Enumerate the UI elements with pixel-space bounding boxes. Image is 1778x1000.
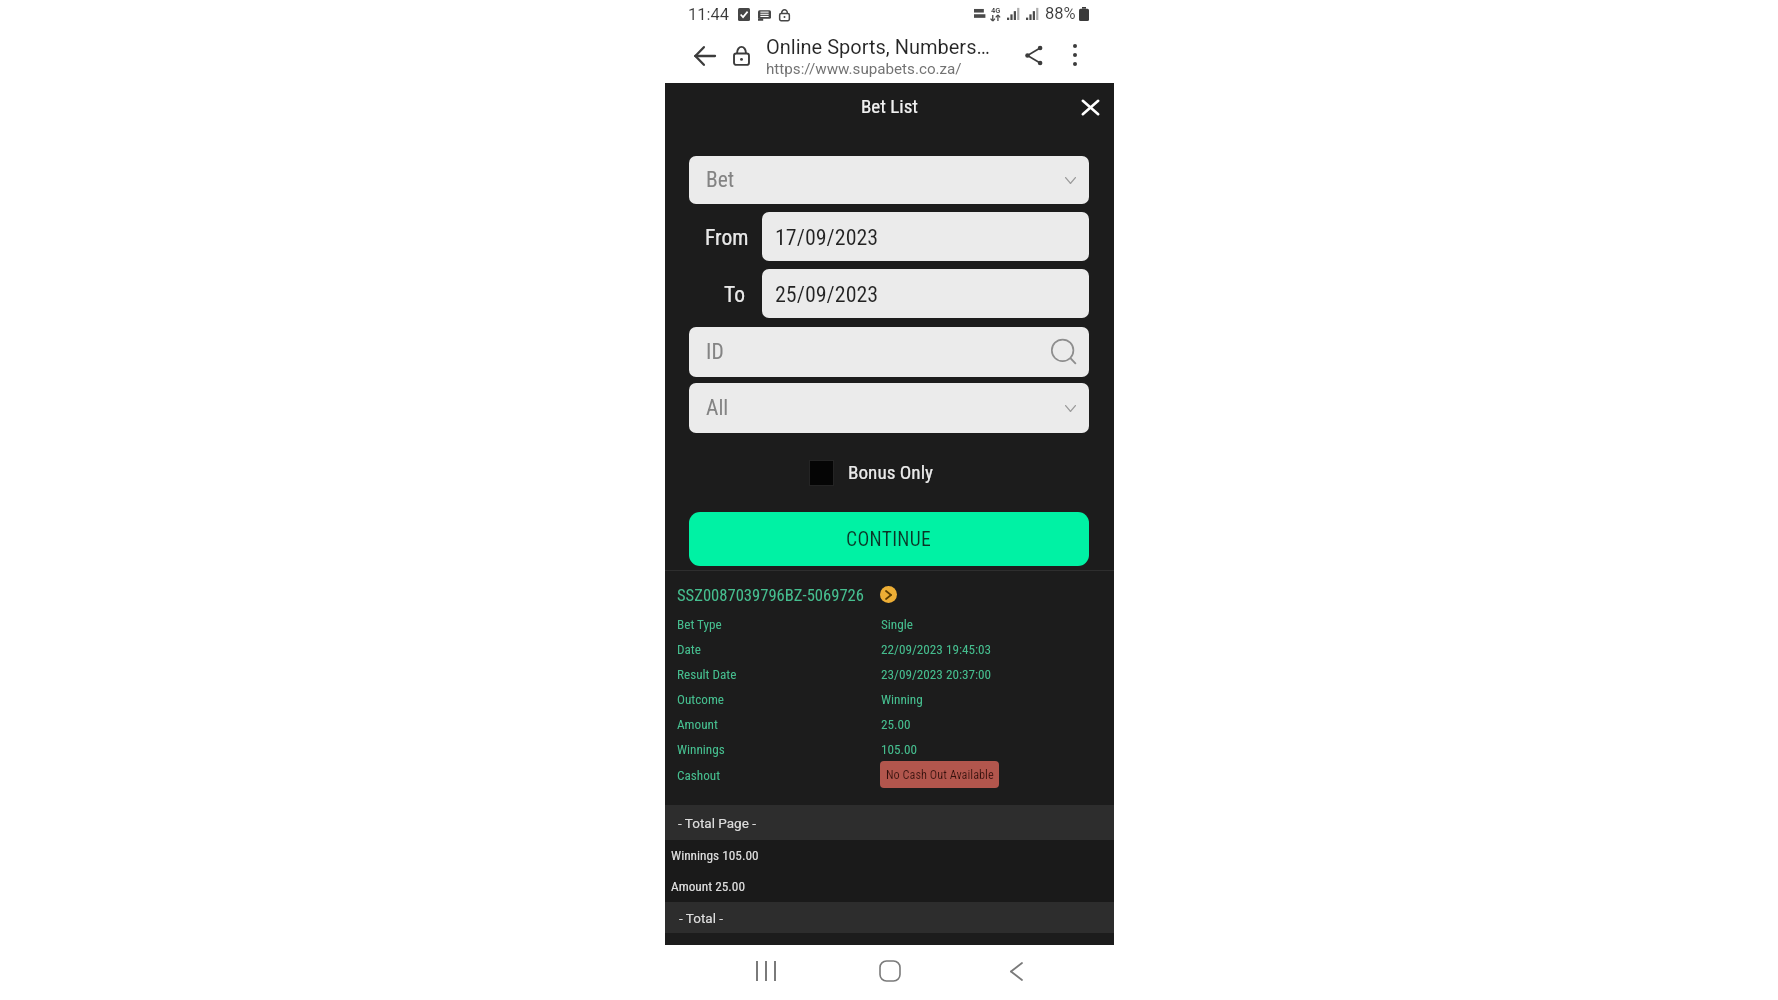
button[interactable]: Close	[1075, 92, 1105, 122]
button[interactable]: All	[689, 383, 1089, 433]
staticText: Bonus Only	[848, 461, 934, 484]
staticText: Result Date	[677, 667, 737, 682]
staticText: 4G	[991, 6, 1001, 15]
button[interactable]: Bonus Only	[809, 459, 934, 485]
button[interactable]: Amount 25.00	[665, 871, 1114, 902]
staticText: Winning	[881, 692, 923, 707]
staticText: 11:44	[688, 5, 730, 24]
staticText: Outcome	[677, 692, 725, 707]
staticText: 23/09/2023 20:37:00	[881, 667, 992, 682]
button[interactable]: - Total Page -	[665, 805, 1114, 840]
staticText: 22/09/2023 19:45:03	[881, 642, 992, 657]
staticText: Winnings 105.00	[671, 848, 759, 864]
button[interactable]: ID	[689, 327, 1089, 377]
staticText: All	[706, 395, 729, 420]
button[interactable]: 17/09/2023	[762, 212, 1089, 261]
button[interactable]: 25/09/2023	[762, 269, 1089, 318]
button[interactable]: Search	[1051, 339, 1078, 366]
staticText: Online Sports, Numbers…	[766, 35, 990, 58]
staticText: 17/09/2023	[775, 225, 879, 251]
staticText: To	[724, 282, 745, 307]
button[interactable]: Back	[996, 951, 1036, 991]
button[interactable]: Winnings 105.00	[665, 840, 1114, 871]
button[interactable]: More options	[1061, 41, 1089, 69]
button[interactable]: - Total -	[665, 902, 1114, 933]
button[interactable]: Site information	[727, 41, 755, 69]
button[interactable]: Recents	[746, 951, 786, 991]
staticText: ID	[706, 339, 724, 364]
staticText: Amount 25.00	[671, 879, 745, 895]
staticText: 105.00	[881, 742, 918, 757]
staticText: Single	[881, 617, 913, 632]
staticText: Bet	[706, 167, 735, 192]
staticText: Cashout	[677, 768, 721, 783]
button[interactable]: Back	[689, 41, 719, 71]
button[interactable]: CONTINUE	[689, 512, 1089, 566]
staticText: From	[705, 225, 749, 250]
staticText: 25.00	[881, 717, 911, 732]
staticText: 88%	[1045, 4, 1076, 23]
button[interactable]: Expand bet	[880, 586, 897, 603]
staticText: Winnings	[677, 742, 725, 757]
staticText: Bet List	[861, 95, 918, 117]
staticText: - Total -	[679, 910, 724, 926]
staticText: Date	[677, 642, 701, 657]
staticText: 25/09/2023	[775, 282, 879, 308]
button[interactable]	[665, 577, 1114, 803]
staticText: SSZ0087039796BZ-5069726	[677, 586, 864, 605]
button[interactable]: Bet	[689, 156, 1089, 204]
button[interactable]: Share	[1020, 41, 1048, 69]
staticText: CONTINUE	[846, 528, 932, 551]
staticText: - Total Page -	[678, 815, 756, 831]
staticText: Amount	[677, 717, 718, 732]
staticText: Bet Type	[677, 617, 722, 632]
staticText: No Cash Out Available	[886, 768, 994, 782]
staticText: https://www.supabets.co.za/	[766, 60, 962, 78]
button[interactable]: Home	[870, 951, 910, 991]
